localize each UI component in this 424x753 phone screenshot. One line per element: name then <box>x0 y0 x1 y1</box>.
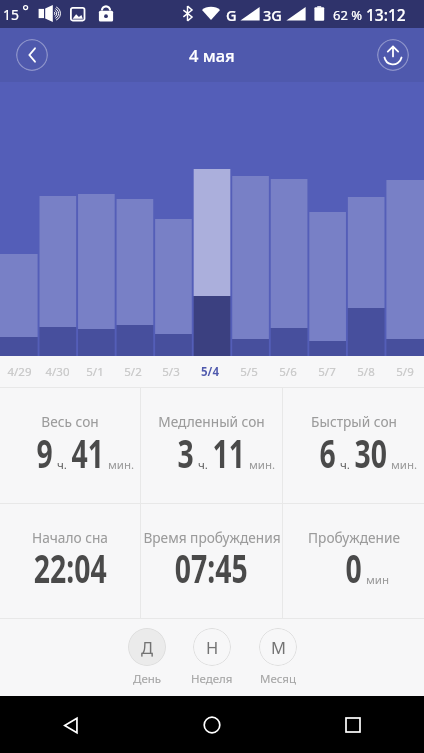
staticText: Месяц <box>260 671 296 687</box>
staticText: мин. <box>249 457 276 473</box>
staticText: 62 % <box>333 6 363 24</box>
button[interactable]: Начало сна <box>0 504 140 618</box>
button[interactable]: 5/6 <box>268 356 307 387</box>
staticText: 3G <box>263 5 282 25</box>
staticText: 5/1 <box>86 364 104 380</box>
staticText: 5/6 <box>279 364 297 380</box>
staticText: 4/30 <box>45 364 70 380</box>
staticText: Н <box>206 636 219 658</box>
staticText: мин. <box>108 457 135 473</box>
staticText: 9 <box>37 427 53 480</box>
staticText: ч. <box>57 457 67 473</box>
staticText: 5/8 <box>357 364 375 380</box>
staticText: 13:12 <box>366 4 406 25</box>
staticText: 5/5 <box>240 364 258 380</box>
staticText: День <box>133 671 162 687</box>
staticText: мин <box>366 572 390 588</box>
staticText: Пробуждение <box>308 528 400 547</box>
staticText: Начало сна <box>32 528 108 547</box>
button[interactable]: 5/9 <box>385 356 424 387</box>
button[interactable]: Медленный сон <box>141 388 282 503</box>
button[interactable]: Быстрый сон <box>283 388 424 503</box>
staticText: Время пробуждения <box>143 528 281 547</box>
button[interactable]: 5/5 <box>229 356 268 387</box>
button[interactable]: Back <box>47 701 95 749</box>
button[interactable]: 5/4 <box>190 356 229 387</box>
staticText: 5/7 <box>318 364 336 380</box>
staticText: 5/3 <box>162 364 180 380</box>
button[interactable]: 5/2 <box>114 356 152 387</box>
staticText: Медленный сон <box>158 412 265 431</box>
button[interactable]: 5/8 <box>346 356 385 387</box>
staticText: G <box>226 5 237 25</box>
button[interactable]: 5/7 <box>307 356 346 387</box>
button[interactable]: Share <box>377 39 409 71</box>
button[interactable]: 4/30 <box>38 356 76 387</box>
button[interactable]: М <box>251 628 305 687</box>
staticText: М <box>271 636 286 658</box>
staticText: 5/2 <box>124 364 142 380</box>
button[interactable]: 5/1 <box>76 356 114 387</box>
staticText: Д <box>141 636 154 658</box>
button[interactable]: Д <box>120 628 174 687</box>
staticText: Неделя <box>191 671 233 687</box>
staticText: ч. <box>340 457 350 473</box>
staticText: 15 <box>3 5 20 24</box>
staticText: 07:45 <box>175 542 248 595</box>
button[interactable]: Время пробуждения <box>141 504 282 618</box>
staticText: Весь сон <box>41 412 99 431</box>
button[interactable]: 5/3 <box>152 356 190 387</box>
staticText: 5/9 <box>396 364 414 380</box>
staticText: мин. <box>391 457 418 473</box>
button[interactable]: Н <box>185 628 239 687</box>
staticText: 5/4 <box>201 364 219 380</box>
button[interactable]: Home <box>188 701 236 749</box>
staticText: 30 <box>354 427 387 480</box>
button[interactable]: Recent apps <box>329 701 377 749</box>
staticText: 11 <box>212 427 245 480</box>
staticText: 4/29 <box>7 364 32 380</box>
staticText: 4 мая <box>189 44 235 66</box>
staticText: Быстрый сон <box>311 412 397 431</box>
staticText: 6 <box>320 427 336 480</box>
button[interactable]: 4/29 <box>0 356 38 387</box>
staticText: 0 <box>346 542 362 595</box>
staticText: ч. <box>198 457 208 473</box>
staticText: 3 <box>178 427 194 480</box>
staticText: 22:04 <box>34 542 107 595</box>
button[interactable]: Весь сон <box>0 388 140 503</box>
button[interactable]: Back <box>16 39 48 71</box>
button[interactable]: Пробуждение <box>283 504 424 618</box>
staticText: 41 <box>71 427 104 480</box>
